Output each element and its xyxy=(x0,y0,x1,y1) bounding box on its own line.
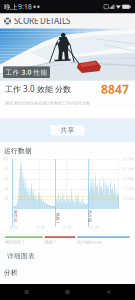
staticText: 晚上9:18 xyxy=(4,2,32,11)
staticText: 60 xyxy=(4,177,8,181)
staticText: 2.5 GHz xyxy=(122,167,133,171)
button[interactable]: Score details xyxy=(0,13,135,28)
staticText: 网页浏览 1 xyxy=(7,215,23,221)
staticText: 测试,测试您的设备完成日常数据工作的运行分数 xyxy=(5,100,90,106)
button[interactable]: 详细图表 xyxy=(4,250,38,261)
staticText: 1.5 GHz xyxy=(122,187,133,191)
staticText: SCORE DETAILS xyxy=(14,16,70,26)
staticText: 00:30 xyxy=(36,226,45,229)
staticText: 80 xyxy=(4,167,8,171)
staticText: 01:30 xyxy=(90,226,99,229)
staticText: 工作 3.0 性能 xyxy=(5,68,47,77)
button[interactable]: Recents xyxy=(13,284,41,300)
staticText: 照片编辑 Beta xyxy=(77,239,102,245)
button[interactable]: 共享 xyxy=(50,125,84,135)
staticText: 照片编辑 Beta xyxy=(82,215,98,221)
staticText: 20 xyxy=(4,197,8,200)
staticText: 8847 xyxy=(101,81,129,97)
staticText: 40 xyxy=(4,187,8,191)
staticText: 工作 3.0 效能 分数 xyxy=(5,84,71,94)
staticText: 100 xyxy=(2,157,8,161)
button[interactable]: Home xyxy=(53,284,81,300)
staticText: 共享 xyxy=(60,126,74,134)
staticText: 2.0 GHz xyxy=(122,177,133,181)
staticText: 视频 1 xyxy=(52,215,63,221)
staticText: 00:00 xyxy=(9,226,18,229)
staticText: 分析 xyxy=(4,268,18,277)
staticText: 3.0 GHz xyxy=(122,157,133,161)
staticText: 1.0 GHz xyxy=(122,197,133,200)
staticText: 运行数据 xyxy=(4,147,32,155)
staticText: 01:00 xyxy=(63,226,72,229)
staticText: 详细图表 xyxy=(7,252,35,260)
staticText: 视频 1 xyxy=(44,239,55,245)
staticText: 网页浏览 1 xyxy=(5,239,24,245)
button[interactable]: Back xyxy=(94,284,122,300)
